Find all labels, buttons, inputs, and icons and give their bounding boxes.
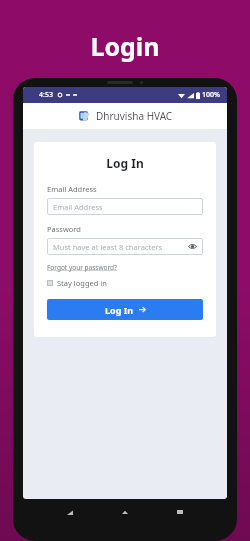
staticText: Dhruvisha HVAC [96, 109, 173, 123]
staticText: Log In [47, 155, 203, 171]
button[interactable]: Recents [172, 504, 188, 520]
button[interactable]: Log In [47, 299, 203, 320]
staticText: 4:53 [39, 90, 53, 100]
staticText: Password [47, 224, 81, 234]
button[interactable]: Forgot your password? [47, 263, 117, 272]
button[interactable]: Home [117, 504, 133, 520]
button[interactable]: Stay logged in [47, 278, 107, 288]
button[interactable]: Must have at least 8 characters [47, 238, 203, 255]
button[interactable]: Show password [181, 238, 203, 255]
staticText: Login [90, 29, 160, 63]
button[interactable]: Back [62, 504, 78, 520]
staticText: Log In [105, 304, 134, 316]
staticText: Forgot your password? [47, 263, 117, 272]
staticText: Stay logged in [57, 278, 107, 288]
staticText: Must have at least 8 characters [53, 242, 181, 252]
staticText: Email Address [47, 184, 97, 194]
staticText: 100% [202, 90, 220, 100]
staticText: Email Address [53, 202, 103, 212]
button[interactable]: Email Address [47, 198, 203, 215]
